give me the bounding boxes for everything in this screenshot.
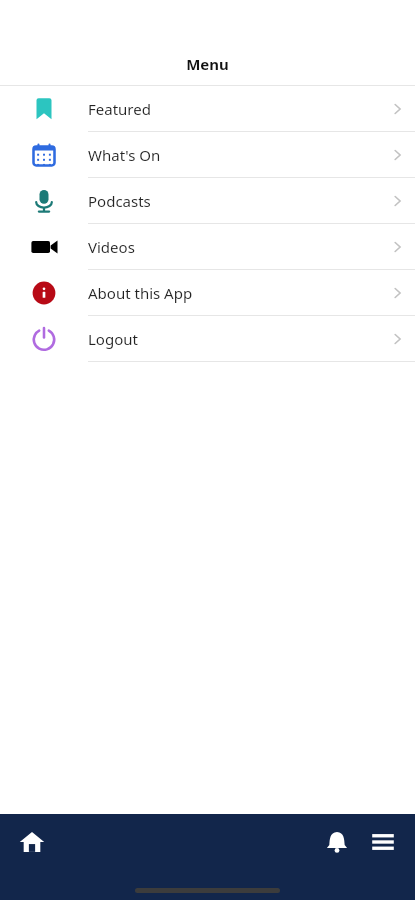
button[interactable]: Notifications [315,820,359,864]
button[interactable]: What's On [0,132,415,178]
staticText: Videos [88,237,135,257]
button[interactable]: Podcasts [0,178,415,224]
staticText: Featured [88,99,151,119]
button[interactable]: Videos [0,224,415,270]
staticText: About this App [88,283,193,303]
staticText: What's On [88,145,161,165]
button[interactable]: Featured [0,86,415,132]
button[interactable]: Home [10,820,54,864]
button[interactable]: Logout [0,316,415,362]
staticText: Podcasts [88,191,151,211]
button[interactable]: About this App [0,270,415,316]
staticText: Logout [88,329,138,349]
button[interactable]: Menu [361,820,405,864]
staticText: Menu [0,54,415,74]
